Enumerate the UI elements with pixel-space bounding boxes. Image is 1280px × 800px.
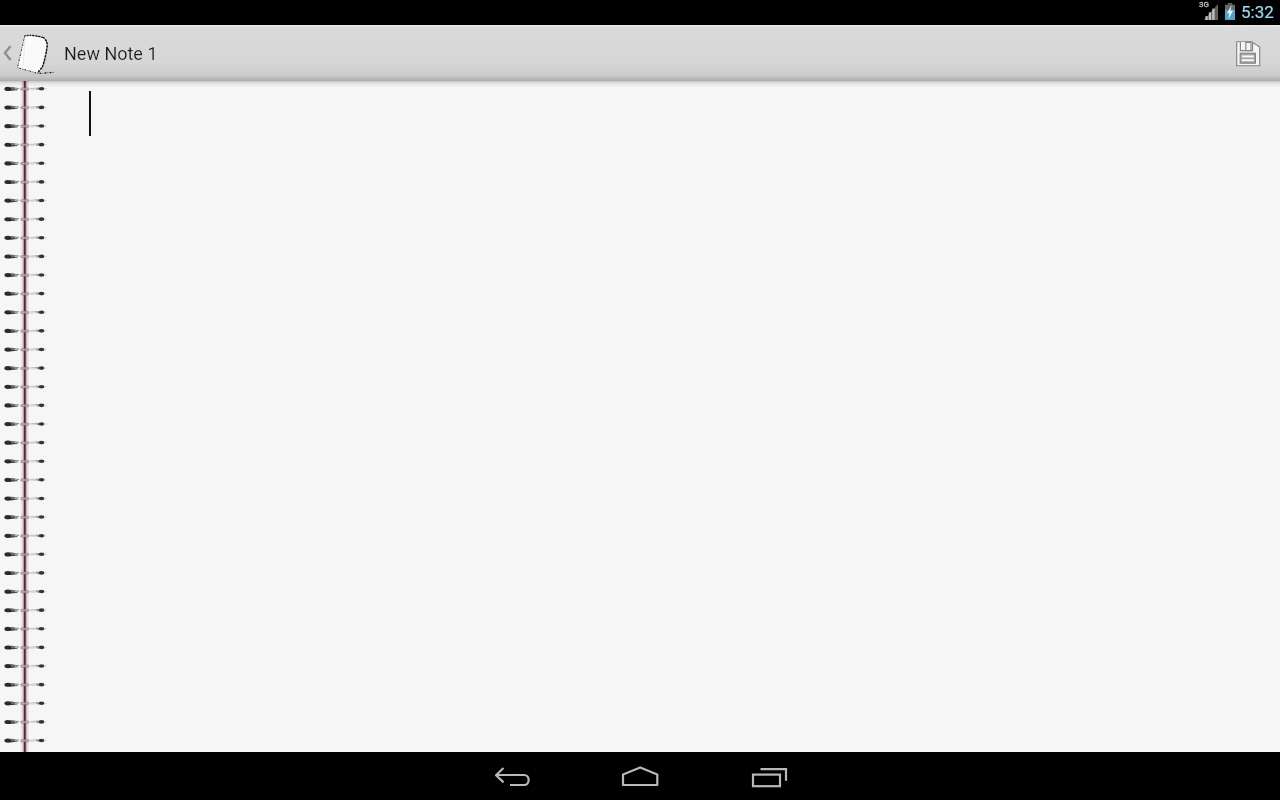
button[interactable]: Navigate up	[0, 25, 16, 81]
button[interactable]: Home	[576, 752, 704, 800]
button[interactable]: Back	[448, 752, 576, 800]
staticText: 3G	[1199, 0, 1209, 9]
button[interactable]: Note text	[0, 81, 1280, 752]
button[interactable]: Recent apps	[704, 752, 832, 800]
button[interactable]: Save	[1224, 25, 1280, 81]
staticText: 5:32	[1241, 2, 1274, 22]
staticText: New Note 1	[64, 43, 158, 64]
